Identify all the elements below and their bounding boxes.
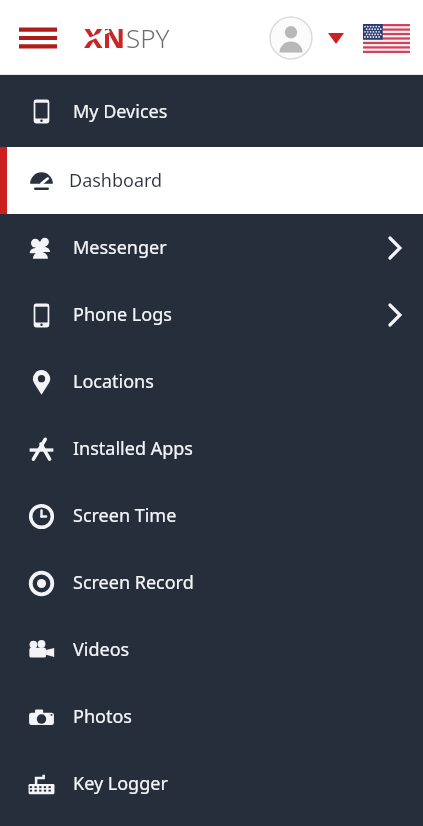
staticText: Locations [73,369,154,394]
button[interactable]: Screen Record [0,549,423,616]
button[interactable]: Dashboard [0,147,423,214]
button[interactable]: Installed Apps [0,415,423,482]
staticText: SPY [126,20,170,55]
button[interactable]: Key Logger [0,750,423,817]
button[interactable]: XN [82,19,170,56]
button[interactable]: Photos [0,683,423,750]
staticText: Dashboard [69,168,163,193]
button[interactable]: Open menu [12,12,64,64]
button[interactable]: Messenger [0,214,423,281]
staticText: Phone Logs [73,302,172,327]
staticText: Screen Time [73,503,177,528]
button[interactable]: My Devices [0,75,423,147]
staticText: Photos [73,704,132,729]
button[interactable]: Locations [0,348,423,415]
staticText: Screen Record [73,570,194,595]
button[interactable]: Account [269,16,313,60]
staticText: Installed Apps [73,436,193,461]
button[interactable]: Account menu [323,25,349,51]
staticText: Videos [73,637,130,662]
staticText: Key Logger [73,771,168,796]
staticText: XN [84,19,125,56]
button[interactable]: Language [361,22,411,54]
button[interactable]: Phone Logs [0,281,423,348]
staticText: Messenger [73,235,167,260]
staticText: My Devices [73,99,168,124]
button[interactable]: Screen Time [0,482,423,549]
button[interactable]: Videos [0,616,423,683]
